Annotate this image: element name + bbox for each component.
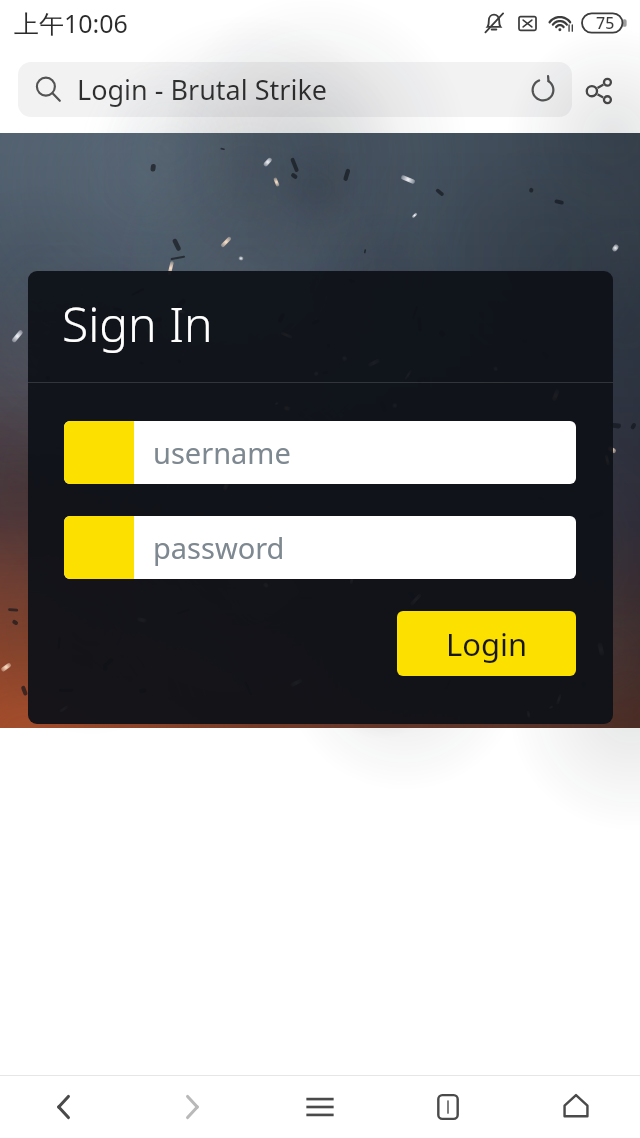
button[interactable]: Back (0, 1076, 128, 1138)
staticText: password (153, 528, 285, 567)
staticText: 75 (596, 12, 615, 34)
button[interactable]: password (64, 516, 576, 579)
button[interactable]: Login - Brutal Strike (18, 62, 572, 117)
staticText: Login - Brutal Strike (77, 71, 524, 108)
button[interactable]: Share (572, 63, 626, 117)
staticText: 上午10:06 (14, 6, 128, 40)
button[interactable]: Home (512, 1076, 640, 1138)
staticText: Sign In (62, 291, 213, 356)
button[interactable]: Login (397, 611, 576, 676)
button[interactable]: Menu (256, 1076, 384, 1138)
staticText: Login (446, 623, 528, 665)
button[interactable]: username (64, 421, 576, 484)
staticText: username (153, 433, 291, 472)
button[interactable]: Tabs, 1 open (384, 1076, 512, 1138)
button[interactable]: Forward (128, 1076, 256, 1138)
button[interactable]: Reload page (524, 71, 562, 109)
